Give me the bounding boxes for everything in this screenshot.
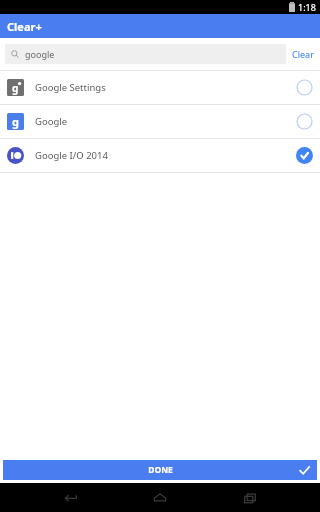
button[interactable]: Back [50, 483, 90, 512]
staticText: Clear [292, 48, 314, 60]
staticText: 1:18 [298, 1, 316, 13]
staticText: Google I/O 2014 [35, 149, 296, 162]
button[interactable]: google [5, 44, 286, 64]
button[interactable]: g [0, 105, 320, 138]
button[interactable]: g [0, 71, 320, 104]
button[interactable]: Home [140, 483, 180, 512]
staticText: Google Settings [35, 81, 296, 94]
button[interactable]: Recents [230, 483, 270, 512]
staticText: DONE [148, 464, 173, 476]
staticText: google [25, 48, 55, 60]
staticText: Google [35, 115, 296, 128]
button[interactable]: Google I/O 2014 [0, 139, 320, 172]
staticText: g [12, 81, 19, 95]
staticText: g [12, 114, 19, 129]
button[interactable]: Clear [292, 48, 314, 60]
staticText: Clear+ [7, 19, 42, 34]
button[interactable]: DONE [3, 460, 317, 480]
